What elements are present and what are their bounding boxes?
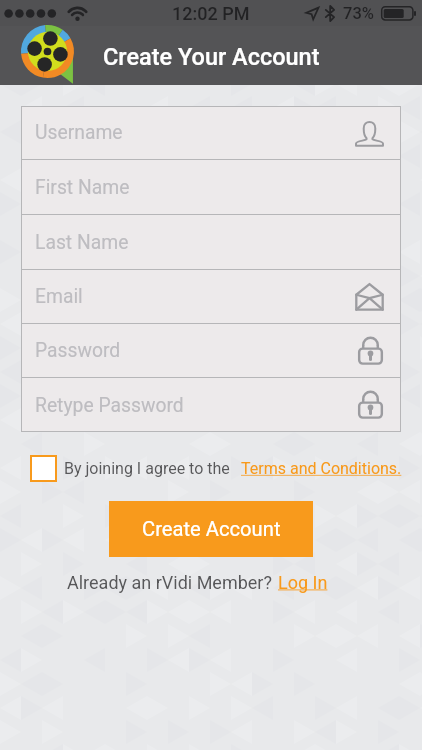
staticText: Retype Password <box>35 394 184 417</box>
button[interactable]: Password <box>21 324 401 377</box>
staticText: By joining I agree to the <box>64 459 230 478</box>
other: Password <box>357 336 384 366</box>
button[interactable]: Retype Password <box>21 378 401 432</box>
other: Username <box>355 118 384 147</box>
button[interactable]: Terms and Conditions. <box>241 459 402 478</box>
staticText: Password <box>35 339 121 362</box>
button[interactable]: Create Account <box>109 501 313 557</box>
other: Password <box>357 390 384 420</box>
staticText: Log In <box>278 572 328 593</box>
staticText: First Name <box>35 176 130 199</box>
button[interactable]: Last Name <box>21 215 401 269</box>
staticText: Create Account <box>142 517 281 541</box>
staticText: Email <box>35 285 83 308</box>
other: Email <box>355 282 384 311</box>
staticText: Username <box>35 121 123 144</box>
staticText: Last Name <box>35 231 129 254</box>
staticText: Terms and Conditions. <box>241 459 402 478</box>
button[interactable]: I agree checkbox <box>30 455 57 482</box>
staticText: Already an rVidi Member? <box>67 572 272 593</box>
staticText: Create Your Account <box>103 43 320 71</box>
staticText: 73% <box>343 4 374 23</box>
staticText: 12:02 PM <box>172 3 250 24</box>
button[interactable]: First Name <box>21 160 401 214</box>
button[interactable]: Email <box>21 270 401 323</box>
button[interactable]: Username <box>21 106 401 159</box>
button[interactable]: Log In <box>278 572 328 593</box>
